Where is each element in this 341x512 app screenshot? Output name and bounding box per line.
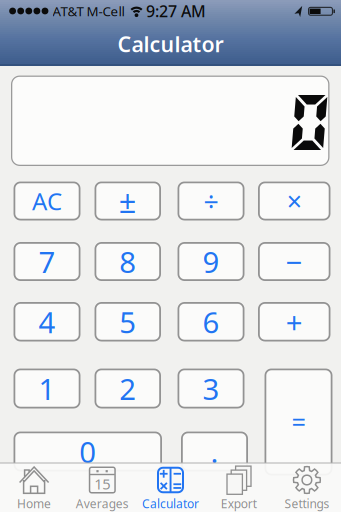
button[interactable]: 5 [94,302,161,341]
staticText: 5 [119,302,136,341]
staticText: 3 [202,369,219,408]
button[interactable]: 15 [68,463,136,512]
staticText: Export [221,495,257,511]
button[interactable]: 7 [13,242,80,281]
staticText: Calculator [117,30,223,58]
button[interactable]: 2 [94,368,161,408]
staticText: 4 [38,302,55,341]
staticText: + [286,302,303,341]
button[interactable]: Home [0,463,68,512]
staticText: . [210,432,218,471]
button[interactable]: 4 [13,302,80,341]
button[interactable]: Calculator [136,463,205,512]
button[interactable]: 6 [177,302,244,341]
button[interactable]: − [258,242,330,281]
button[interactable]: . [181,431,248,471]
button[interactable]: = [264,368,332,475]
button[interactable]: + [258,302,330,341]
button[interactable]: 0 [13,431,162,471]
staticText: Home [17,495,51,511]
button[interactable]: 3 [177,368,244,408]
button[interactable]: Settings [273,463,341,512]
button[interactable]: ÷ [177,181,244,220]
staticText: ÷ [203,183,218,219]
button[interactable]: 8 [94,242,161,281]
staticText: AT&T M-Cell [52,2,124,20]
staticText: = [291,405,305,439]
button[interactable]: AC [13,181,80,220]
staticText: 2 [119,369,136,408]
staticText: AC [32,185,62,217]
staticText: 8 [119,242,136,281]
staticText: 9 [202,242,219,281]
button[interactable]: 1 [13,368,80,408]
staticText: − [286,242,303,281]
button[interactable]: Export [205,463,273,512]
staticText: × [287,183,302,219]
staticText: 1 [38,369,55,408]
button[interactable]: 9 [177,242,244,281]
staticText: 9:27 AM [146,0,206,22]
button[interactable]: × [258,181,330,220]
staticText: Averages [76,495,129,511]
staticText: Settings [284,495,329,511]
staticText: Calculator [142,495,199,511]
staticText: 6 [202,302,219,341]
staticText: 0 [79,432,96,471]
staticText: ± [119,181,137,221]
button[interactable]: ± [94,181,161,220]
staticText: 15 [94,474,110,494]
staticText: 7 [38,242,55,281]
